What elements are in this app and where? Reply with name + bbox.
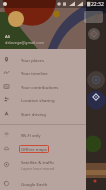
button[interactable]: Your timeline — [0, 66, 86, 79]
button[interactable]: Your places — [0, 53, 86, 66]
button[interactable]: Location sharing — [0, 93, 86, 106]
button[interactable]: Account — [8, 11, 24, 27]
button[interactable]: My location — [92, 76, 100, 84]
staticText: Your timeline — [21, 70, 48, 76]
button[interactable]: Voice search — [92, 13, 100, 21]
staticText: Satellite & traffic — [21, 159, 55, 165]
staticText: Your places — [21, 57, 45, 63]
staticText: Google Earth — [21, 181, 48, 187]
button[interactable]: Your contributions — [0, 80, 86, 93]
staticText: Offline maps — [21, 146, 47, 152]
staticText: 22:32 — [91, 1, 104, 8]
staticText: Layers have moved — [21, 166, 55, 171]
button[interactable]: Offline maps — [0, 142, 86, 155]
staticText: Start driving — [21, 111, 46, 117]
staticText: Your contributions — [21, 84, 59, 90]
button[interactable]: Satellite & traffic — [0, 158, 86, 171]
staticText: Ali — [5, 34, 11, 40]
button[interactable]: Compass — [90, 30, 98, 38]
button[interactable]: Google Earth — [0, 177, 86, 190]
staticText: delavega@gmail.com — [5, 40, 45, 45]
button[interactable]: Start driving — [0, 107, 86, 120]
button[interactable]: Wi-Fi only — [0, 128, 86, 141]
staticText: Wi-Fi only — [21, 132, 41, 138]
staticText: Location sharing — [21, 97, 55, 103]
button[interactable]: Start navigation — [92, 93, 100, 101]
